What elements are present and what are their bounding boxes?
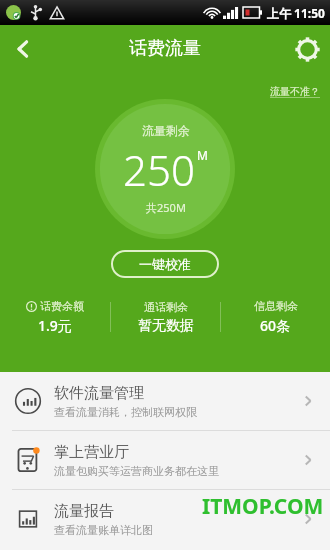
staticText: 上午 11:50 xyxy=(267,5,325,21)
staticText: 1.9元 xyxy=(38,316,72,335)
staticText: 掌上营业厅 xyxy=(54,443,129,462)
staticText: 查看流量消耗，控制联网权限 xyxy=(54,405,197,419)
staticText: 通话剩余 xyxy=(144,300,188,314)
staticText: 一键校准 xyxy=(139,256,191,272)
staticText: 流量剩余 xyxy=(142,123,190,138)
button[interactable]: 流量报告 xyxy=(0,490,330,548)
staticText: 暂无数据 xyxy=(138,317,194,335)
staticText: 查看流量账单详北图 xyxy=(54,523,153,537)
button[interactable]: 软件流量管理 xyxy=(0,372,330,430)
button[interactable]: Back xyxy=(0,26,46,72)
staticText: 话费余额 xyxy=(40,299,84,313)
staticText: 60条 xyxy=(260,316,291,335)
staticText: M xyxy=(197,147,208,163)
button[interactable]: 流量不准？ xyxy=(270,85,320,98)
staticText: 信息剩余 xyxy=(254,299,298,313)
button[interactable]: 话费余额 xyxy=(0,299,110,335)
button[interactable]: 一键校准 xyxy=(111,250,219,278)
staticText: 250 xyxy=(123,141,195,198)
staticText: ITMOP.COM xyxy=(202,492,324,521)
button[interactable]: 掌上营业厅 xyxy=(0,431,330,489)
staticText: 共250M xyxy=(146,200,186,215)
button[interactable]: 通话剩余 xyxy=(111,300,220,335)
staticText: 流量报告 xyxy=(54,502,114,521)
button[interactable]: Settings xyxy=(284,26,330,72)
staticText: 流量包购买等运营商业务都在这里 xyxy=(54,464,219,478)
staticText: 话费流量 xyxy=(129,37,201,60)
staticText: 软件流量管理 xyxy=(54,384,144,403)
button[interactable]: 信息剩余 xyxy=(221,299,330,335)
